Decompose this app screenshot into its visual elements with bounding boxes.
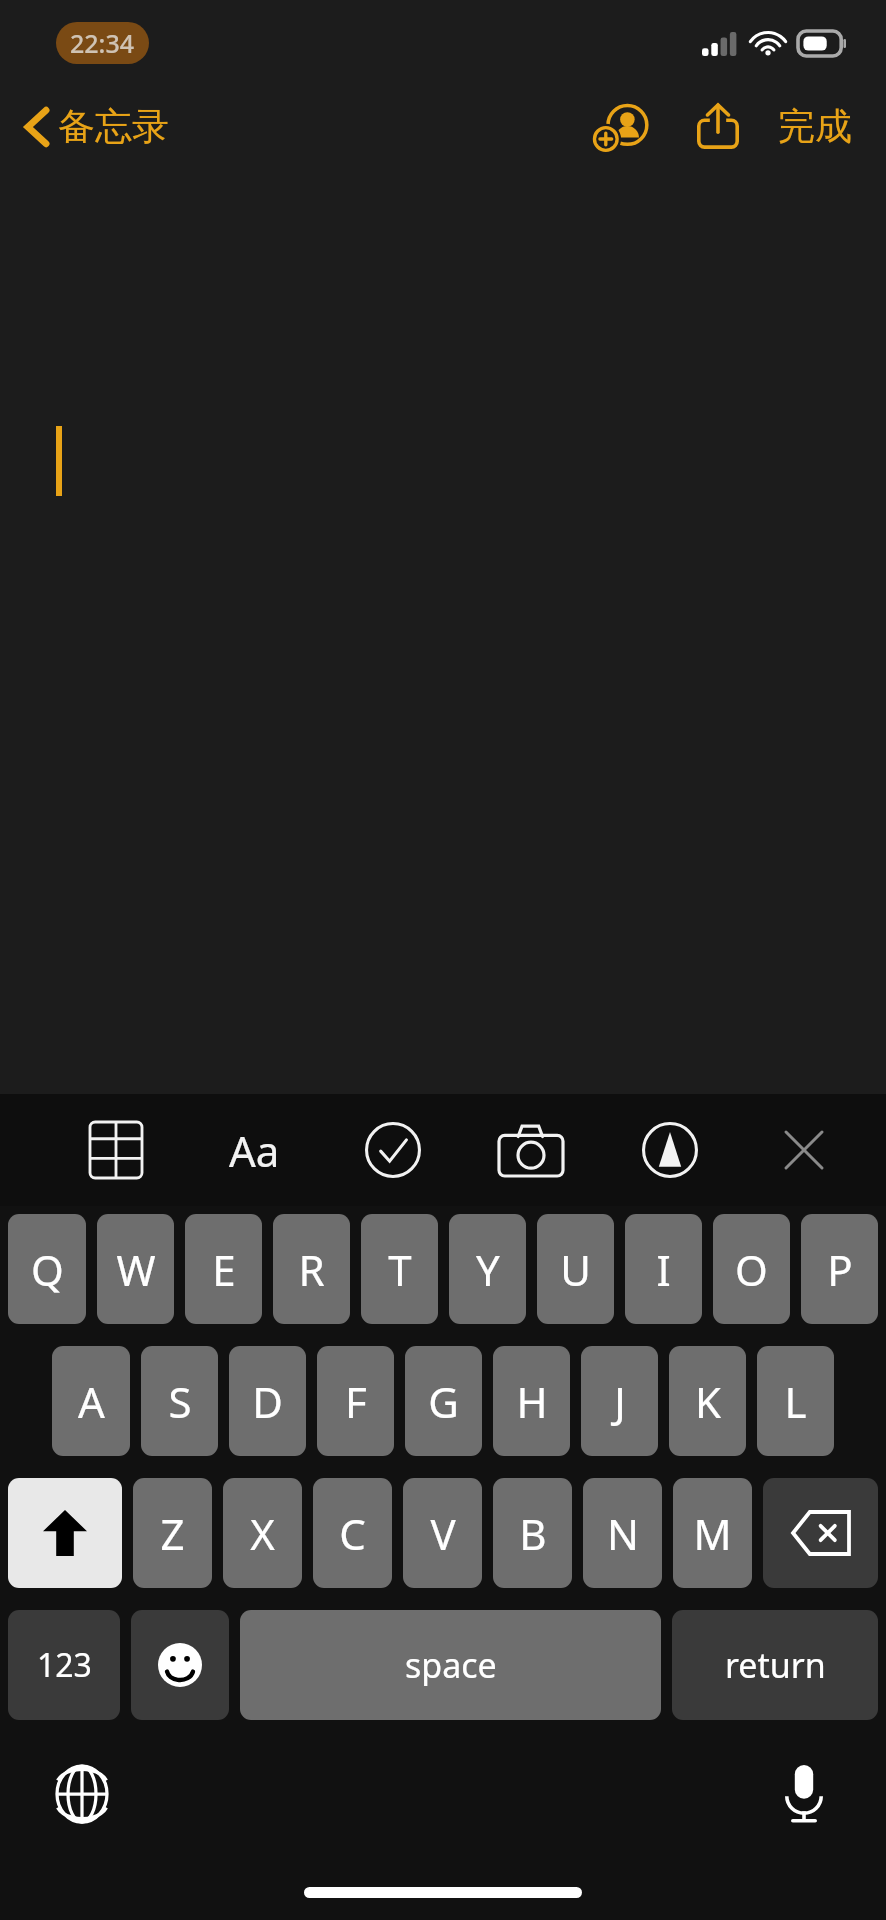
staticText: 123 — [37, 1643, 92, 1687]
staticText: D — [252, 1373, 283, 1430]
staticText: X — [250, 1505, 275, 1562]
button[interactable]: L — [757, 1346, 834, 1456]
button[interactable]: 备忘录 — [18, 97, 175, 156]
button[interactable]: V — [403, 1478, 482, 1588]
staticText: B — [519, 1505, 547, 1562]
button[interactable]: G — [405, 1346, 482, 1456]
staticText: 备忘录 — [58, 103, 169, 150]
staticText: J — [614, 1373, 626, 1430]
staticText: G — [428, 1373, 459, 1430]
staticText: 22:34 — [70, 26, 135, 60]
button[interactable]: Emoji — [131, 1610, 229, 1720]
staticText: return — [725, 1642, 826, 1688]
staticText: V — [430, 1505, 456, 1562]
staticText: space — [405, 1642, 497, 1688]
button[interactable]: A — [52, 1346, 130, 1456]
staticText: S — [168, 1373, 192, 1430]
staticText: N — [607, 1505, 639, 1562]
staticText: A — [78, 1373, 105, 1430]
staticText: I — [656, 1241, 671, 1298]
staticText: U — [560, 1241, 591, 1298]
button[interactable]: Q — [8, 1214, 86, 1324]
staticText: Aa — [229, 1122, 280, 1179]
staticText: E — [212, 1241, 236, 1298]
button[interactable]: 123 — [8, 1610, 120, 1720]
button[interactable]: S — [141, 1346, 218, 1456]
button[interactable]: X — [223, 1478, 302, 1588]
button[interactable]: Shift — [8, 1478, 122, 1588]
staticText: Z — [160, 1505, 185, 1562]
button[interactable]: U — [537, 1214, 614, 1324]
staticText: P — [827, 1241, 853, 1298]
button[interactable]: W — [97, 1214, 174, 1324]
button[interactable]: Add people — [584, 88, 660, 164]
staticText: Y — [476, 1241, 500, 1298]
button[interactable]: P — [801, 1214, 878, 1324]
button[interactable]: C — [313, 1478, 392, 1588]
staticText: M — [693, 1505, 732, 1562]
button[interactable]: N — [583, 1478, 662, 1588]
button[interactable]: Checklist — [357, 1114, 429, 1186]
button[interactable]: Table — [80, 1114, 152, 1186]
button[interactable]: Share — [682, 90, 754, 162]
button[interactable]: M — [673, 1478, 752, 1588]
button[interactable]: D — [229, 1346, 306, 1456]
button[interactable]: Backspace — [763, 1478, 878, 1588]
staticText: T — [388, 1241, 412, 1298]
button[interactable]: return — [672, 1610, 878, 1720]
staticText: R — [298, 1241, 325, 1298]
staticText: L — [784, 1373, 807, 1430]
button[interactable]: E — [185, 1214, 262, 1324]
button[interactable]: Z — [133, 1478, 212, 1588]
button[interactable]: H — [493, 1346, 570, 1456]
button[interactable]: I — [625, 1214, 702, 1324]
button[interactable]: Text format — [218, 1114, 290, 1186]
staticText: 完成 — [778, 103, 852, 150]
button[interactable]: O — [713, 1214, 790, 1324]
button[interactable]: R — [273, 1214, 350, 1324]
button[interactable]: Camera — [495, 1114, 567, 1186]
button[interactable]: B — [493, 1478, 572, 1588]
button[interactable]: T — [361, 1214, 438, 1324]
button[interactable]: K — [669, 1346, 746, 1456]
staticText: C — [339, 1505, 366, 1562]
staticText: H — [516, 1373, 548, 1430]
staticText: F — [345, 1373, 367, 1430]
button[interactable]: Change keyboard — [46, 1758, 118, 1830]
staticText: W — [116, 1241, 156, 1298]
button[interactable]: J — [581, 1346, 658, 1456]
staticText: Q — [31, 1241, 64, 1298]
button[interactable]: Dictation — [768, 1758, 840, 1830]
button[interactable]: Y — [449, 1214, 526, 1324]
button[interactable]: Close keyboard — [772, 1118, 836, 1182]
button[interactable]: space — [240, 1610, 661, 1720]
staticText: O — [735, 1241, 768, 1298]
button[interactable]: 完成 — [770, 95, 860, 158]
staticText: K — [695, 1373, 721, 1430]
button[interactable]: Markup — [634, 1114, 706, 1186]
button[interactable]: F — [317, 1346, 394, 1456]
